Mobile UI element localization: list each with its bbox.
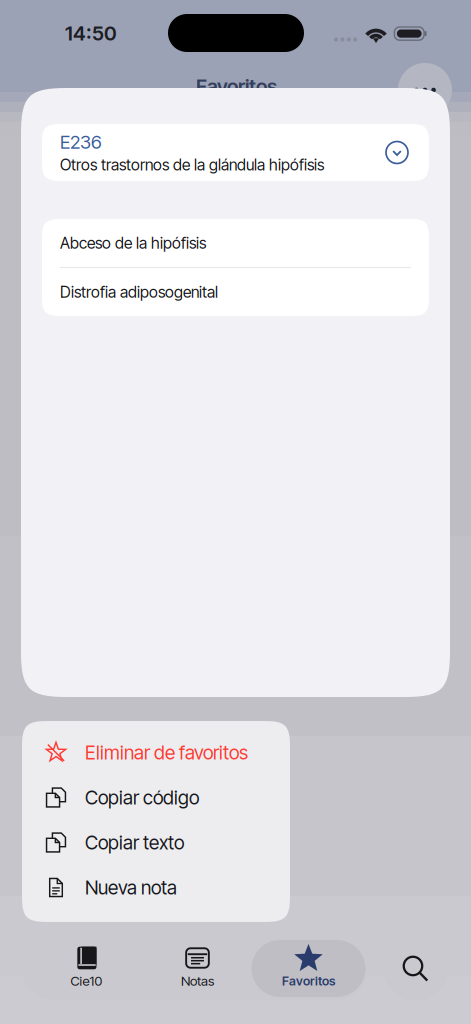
staticText: Favoritos [196,74,277,98]
button[interactable]: Cie10 [31,937,142,1000]
staticText: Nueva nota [85,876,177,899]
staticText: Eliminar de favoritos [85,741,248,764]
staticText: Notas [181,973,214,989]
staticText: Abceso de la hipófisis [60,233,206,252]
staticText: Otros trastornos de la glándula hipófisi… [60,155,324,174]
staticText: Favoritos [282,973,335,989]
button[interactable]: Notas [142,937,253,1000]
button[interactable]: Copiar texto [22,820,290,865]
button[interactable]: Copiar código [22,775,290,820]
button[interactable]: Buscar [383,936,448,1001]
button[interactable]: Nueva nota [22,865,290,910]
staticText: E236 [60,131,102,153]
staticText: Distrofia adiposogenital [60,282,218,301]
button[interactable]: Favoritos [253,937,364,1000]
staticText: Copiar código [85,786,199,809]
staticText: Cie10 [70,973,102,989]
staticText: Copiar texto [85,831,184,854]
staticText: 14:50 [65,21,117,45]
button[interactable]: Eliminar de favoritos [22,730,290,775]
